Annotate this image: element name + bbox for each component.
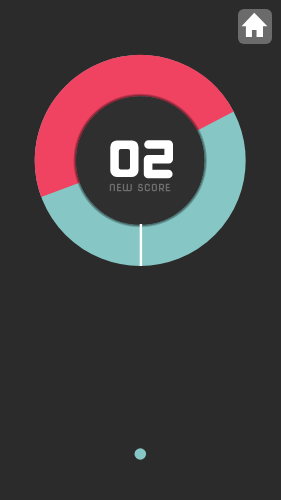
staticText: NEW SCORE [60, 182, 220, 196]
button[interactable]: Home [238, 9, 272, 44]
